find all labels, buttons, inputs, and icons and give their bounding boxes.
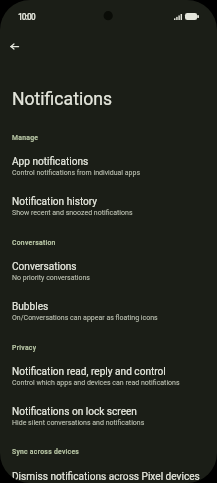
staticText: 10:00 xyxy=(18,12,35,22)
staticText: Dismiss notifications across Pixel devic… xyxy=(12,471,200,483)
button[interactable]: Dismiss notifications across Pixel devic… xyxy=(0,463,217,483)
staticText: Conversation xyxy=(12,239,56,247)
button[interactable]: Bubbles xyxy=(0,293,217,333)
button[interactable]: Notification read, reply and control xyxy=(0,358,217,398)
staticText: Bubbles xyxy=(12,301,49,313)
staticText: Manage xyxy=(12,134,39,142)
staticText: Notifications xyxy=(12,89,113,110)
button[interactable]: Notifications on lock screen xyxy=(0,398,217,438)
staticText: On/Conversations can appear as floating … xyxy=(12,314,158,322)
staticText: No priority conversations xyxy=(12,274,90,282)
staticText: Privacy xyxy=(12,344,37,352)
button[interactable]: Back xyxy=(3,35,25,57)
staticText: Notifications on lock screen xyxy=(12,406,137,418)
button[interactable]: Notification history xyxy=(0,188,217,228)
button[interactable]: Conversations xyxy=(0,253,217,293)
staticText: Notification history xyxy=(12,196,98,208)
staticText: Conversations xyxy=(12,261,77,273)
staticText: Show recent and snoozed notifications xyxy=(12,209,133,217)
staticText: App notifications xyxy=(12,156,89,168)
staticText: Hide silent conversations and notificati… xyxy=(12,419,145,427)
staticText: Sync across devices xyxy=(12,448,80,456)
staticText: Notification read, reply and control xyxy=(12,366,166,378)
button[interactable]: App notifications xyxy=(0,148,217,188)
staticText: Control notifications from individual ap… xyxy=(12,169,141,177)
staticText: Control which apps and devices can read … xyxy=(12,379,180,387)
